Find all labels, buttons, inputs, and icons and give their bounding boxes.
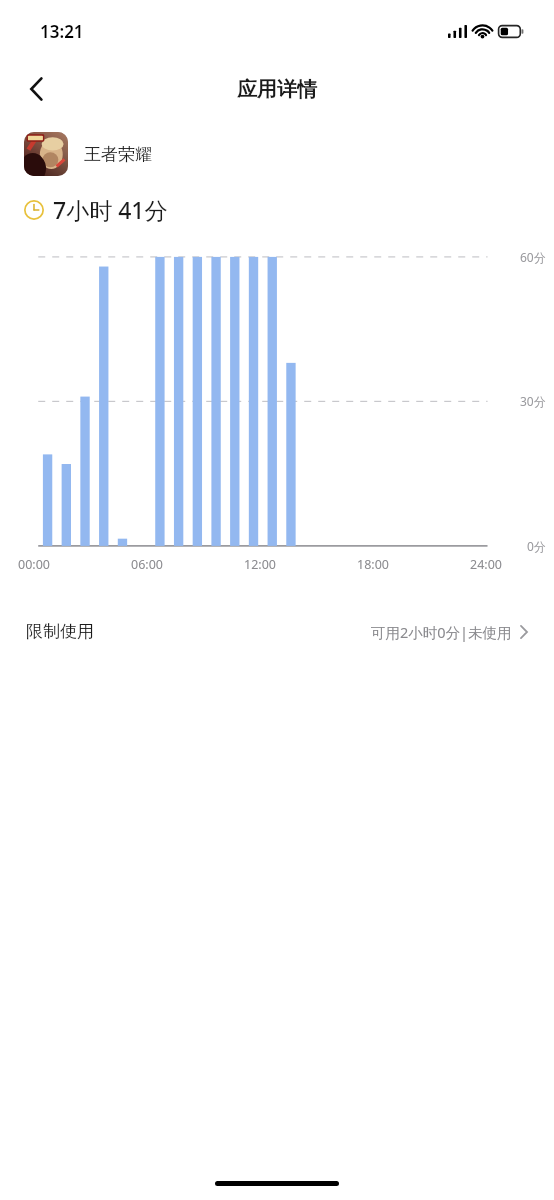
staticText: 7小时 41分 bbox=[53, 194, 168, 225]
staticText: 王者荣耀 bbox=[84, 144, 152, 165]
staticText: 12:00 bbox=[244, 556, 276, 573]
staticText: 30分 bbox=[520, 393, 546, 409]
staticText: 可用2小时0分|未使用 bbox=[371, 622, 512, 642]
staticText: 13:21 bbox=[40, 20, 84, 43]
staticText: 00:00 bbox=[18, 556, 50, 573]
staticText: 60分 bbox=[520, 249, 546, 265]
button[interactable]: 王者荣耀 图标 bbox=[24, 132, 68, 176]
staticText: 24:00 bbox=[470, 556, 502, 573]
staticText: 06:00 bbox=[131, 556, 163, 573]
staticText: 限制使用 bbox=[26, 621, 94, 642]
staticText: 18:00 bbox=[357, 556, 389, 573]
button[interactable]: 限制使用 bbox=[10, 599, 544, 664]
button[interactable]: 返回 bbox=[12, 65, 60, 113]
staticText: 0分 bbox=[527, 538, 546, 554]
staticText: 应用详情 bbox=[237, 77, 317, 102]
